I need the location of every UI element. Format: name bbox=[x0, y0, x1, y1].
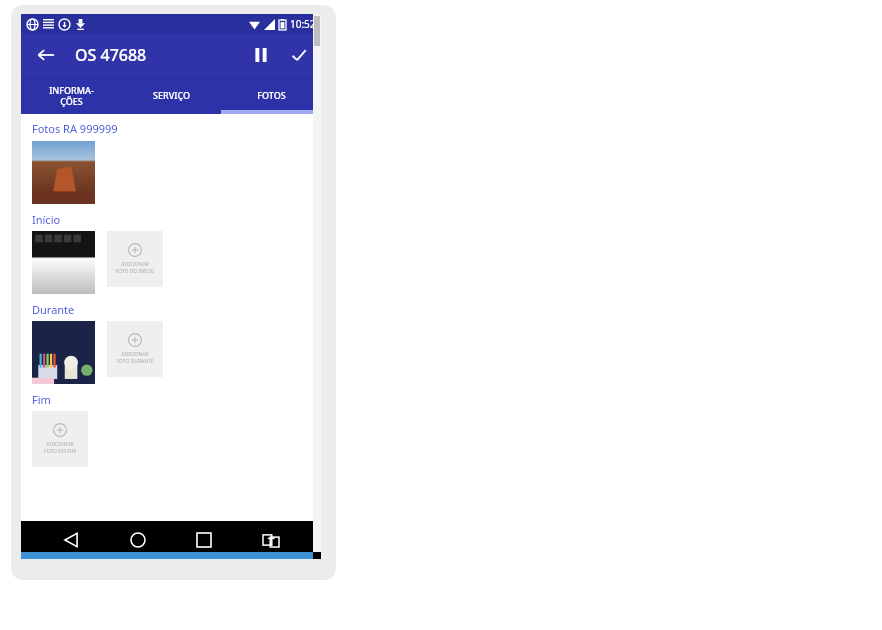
staticText: OS 47688 bbox=[75, 44, 147, 66]
staticText: Fim bbox=[32, 392, 51, 407]
staticText: Início bbox=[32, 212, 61, 227]
staticText: ADICIONAR bbox=[121, 261, 149, 268]
staticText: FOTO DURANTE bbox=[116, 358, 154, 365]
button[interactable]: SERVIÇO bbox=[121, 76, 221, 114]
button[interactable]: ADICIONAR bbox=[107, 321, 163, 377]
staticText: FOTOS bbox=[257, 89, 286, 101]
button[interactable]: Photo bbox=[32, 321, 95, 384]
button[interactable]: Rotate screen bbox=[254, 523, 288, 557]
staticText: Durante bbox=[32, 302, 75, 317]
staticText: ADICIONAR bbox=[46, 441, 74, 448]
staticText: FOTO DO FIM bbox=[44, 448, 76, 455]
button[interactable]: Recents bbox=[187, 523, 221, 557]
button[interactable]: Pause bbox=[249, 43, 273, 67]
staticText: ADICIONAR bbox=[121, 351, 149, 358]
staticText: FOTO DO INÍCIO bbox=[115, 268, 155, 275]
staticText: SERVIÇO bbox=[153, 89, 190, 101]
button[interactable]: Back bbox=[54, 523, 88, 557]
button[interactable]: Photo bbox=[32, 231, 95, 294]
button[interactable]: Confirm bbox=[287, 43, 311, 67]
button[interactable]: FOTOS bbox=[221, 76, 321, 114]
button[interactable]: Home bbox=[121, 523, 155, 557]
staticText: Fotos RA 999999 bbox=[32, 121, 118, 136]
button[interactable]: INFORMA- ÇÕES bbox=[21, 76, 121, 114]
staticText: INFORMA- ÇÕES bbox=[49, 84, 94, 107]
button[interactable]: ADICIONAR bbox=[107, 231, 163, 287]
button[interactable]: Photo bbox=[32, 141, 95, 204]
staticText: 10:52 bbox=[290, 17, 316, 31]
button[interactable]: Back bbox=[33, 42, 59, 68]
button[interactable]: ADICIONAR bbox=[32, 411, 88, 467]
